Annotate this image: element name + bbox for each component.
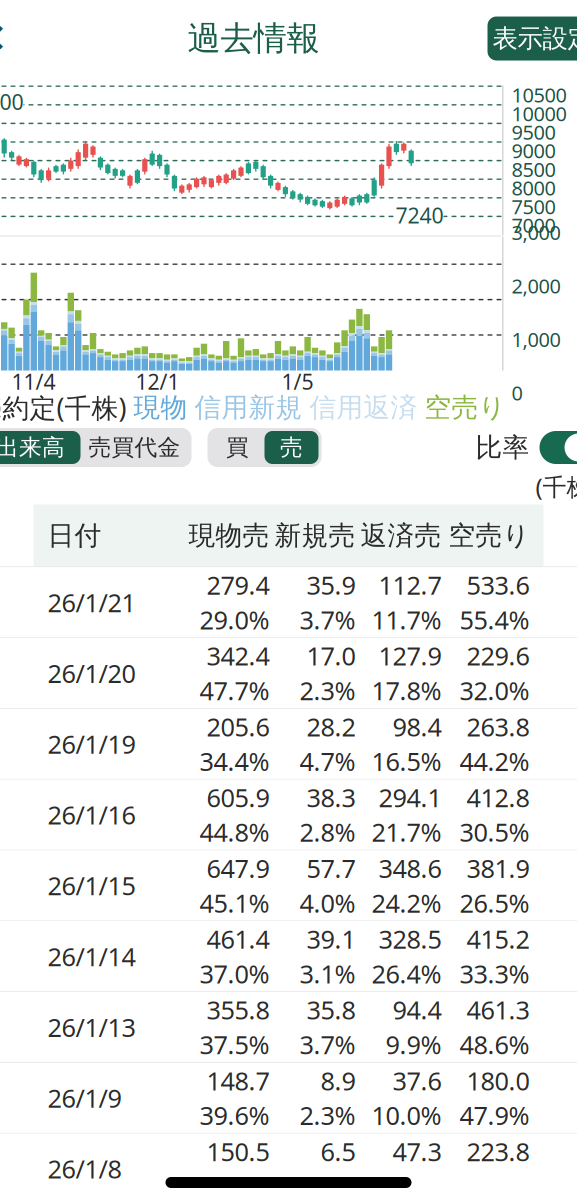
staticText: 348.6 [378,851,441,885]
staticText: 10500 [511,81,566,108]
button[interactable]: 26/1/8 [0,1134,577,1200]
staticText: 28.2 [306,710,355,743]
staticText: 2,000 [511,272,560,299]
staticText: 過去情報 [187,18,319,59]
staticText: 461.4 [206,922,269,956]
staticText: 33.3% [459,957,529,990]
staticText: 205.6 [206,710,269,743]
staticText: 47.3 [392,1135,441,1168]
staticText: 21.7% [371,815,441,849]
staticText: 112.7 [378,568,441,602]
staticText: 1,000 [511,326,560,353]
staticText: 605.9 [206,781,269,814]
button[interactable]: 売買代金 [80,431,188,464]
staticText: 現物売 [188,519,269,552]
staticText: 94.4 [392,993,441,1027]
staticText: 返済売 [360,519,441,552]
staticText: 148.7 [206,1064,269,1097]
button[interactable]: 売 [264,431,318,464]
staticText: 10000 [511,100,566,127]
staticText: 11/4 [11,367,55,396]
staticText: 44.8% [199,815,269,849]
staticText: 37.5% [199,1028,269,1061]
staticText: 17.0 [306,639,355,673]
staticText: 10200 [0,87,23,116]
staticText: 34.4% [199,744,269,778]
staticText: 9500 [511,119,555,145]
staticText: 新規売 [274,519,355,552]
button[interactable]: 26/1/21 [0,567,577,638]
button[interactable]: 26/1/14 [0,921,577,992]
staticText: 412.8 [466,781,529,814]
staticText: 9.9% [385,1028,441,1061]
staticText: (千株) [535,471,577,502]
staticText: 2.3% [299,1098,355,1132]
staticText: 7000 [511,212,555,238]
staticText: 7240 [395,201,443,229]
button[interactable]: 閉じる [0,10,19,66]
staticText: 3.7% [299,1028,355,1061]
staticText: 0 [511,380,522,406]
staticText: 6.5 [320,1135,355,1168]
staticText: 2.8% [299,815,355,849]
staticText: 現物 [133,391,187,424]
staticText: 223.8 [466,1135,529,1168]
staticText: 売買代金 [88,434,180,461]
staticText: ✕ [0,16,8,61]
staticText: 16.5% [371,744,441,778]
staticText: 買 [226,434,249,461]
staticText: 26/1/9 [47,1081,121,1115]
staticText: 35.8 [306,993,355,1027]
staticText: 26/1/8 [47,1152,121,1185]
staticText: 26/1/14 [47,939,135,973]
staticText: 出来高 [0,434,65,461]
staticText: 294.1 [378,781,441,814]
staticText: 26/1/21 [47,585,135,619]
staticText: 55.4% [459,603,529,636]
staticText: 35.9 [306,568,355,602]
staticText: 47.7% [199,674,269,707]
staticText: 26/1/19 [47,727,135,761]
staticText: 4.7% [299,744,355,778]
staticText: 空売り [448,519,529,552]
staticText: 3.7% [299,603,355,636]
staticText: 48.6% [459,1028,529,1061]
staticText: 98.4 [392,710,441,743]
button[interactable]: 26/1/9 [0,1063,577,1134]
staticText: 180.0 [466,1064,529,1097]
staticText: 信用返済 [309,391,417,424]
staticText: 2.3% [299,674,355,707]
staticText: 229.6 [466,639,529,673]
button[interactable]: 表示設定 [487,16,577,60]
staticText: 647.9 [206,851,269,885]
staticText: 売 [280,434,303,461]
button[interactable]: 26/1/19 [0,709,577,780]
staticText: 279.4 [206,568,269,602]
staticText: 26/1/15 [47,869,135,902]
staticText: 12/1 [135,367,179,396]
button[interactable]: 26/1/16 [0,780,577,850]
staticText: 26/1/13 [47,1010,135,1044]
staticText: 26/1/16 [47,798,135,831]
staticText: 37.6 [392,1064,441,1097]
button[interactable]: 比率 [539,431,577,464]
staticText: 7500 [511,193,555,220]
staticText: 信用新規 [194,391,302,424]
staticText: 127.9 [378,639,441,673]
button[interactable]: 26/1/15 [0,850,577,921]
staticText: 32.0% [459,674,529,707]
button[interactable]: 26/1/13 [0,992,577,1063]
staticText: 415.2 [466,922,529,956]
button[interactable]: 買 [210,431,264,464]
button[interactable]: 出来高 [0,431,80,464]
button[interactable]: 26/1/20 [0,638,577,709]
staticText: 26.4% [371,957,441,990]
staticText: 29.0% [199,603,269,636]
staticText: 533.6 [466,568,529,602]
staticText: 381.9 [466,851,529,885]
staticText: 日付 [47,519,101,552]
staticText: 売約定(千株) [0,390,126,425]
staticText: 24.2% [371,886,441,920]
staticText: 44.2% [459,744,529,778]
staticText: 37.0% [199,957,269,990]
